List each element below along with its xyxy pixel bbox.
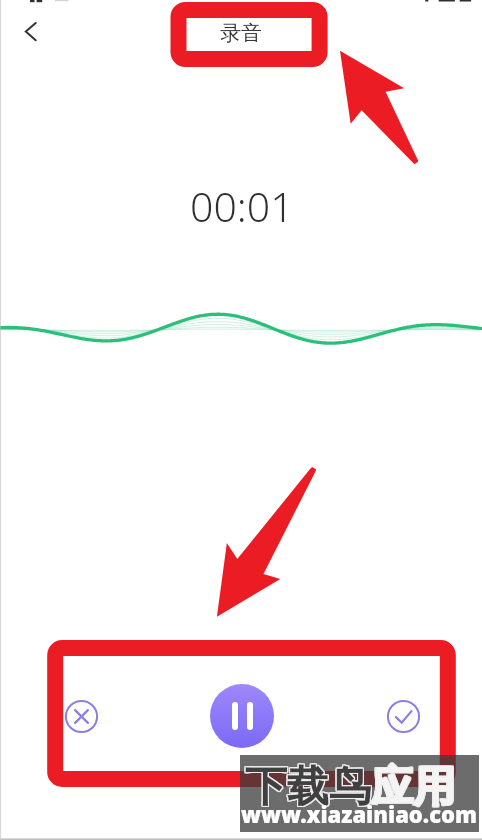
button[interactable]: Cancel recording [56,691,107,742]
staticText: 下载鸟应用 [244,762,454,815]
staticText: 00:01 [190,178,294,234]
staticText: 下载鸟应用 [246,762,456,815]
staticText: 下载鸟应用 [246,760,456,813]
staticText: 下载鸟应用 [244,761,454,814]
button[interactable]: Pause recording [210,684,274,748]
staticText: 下载鸟应用 [244,760,454,813]
button[interactable]: Back [8,10,54,56]
staticText: 下载鸟 [245,761,371,814]
staticText: 下载鸟应用 [245,760,455,813]
button[interactable]: Finish recording [378,691,429,742]
staticText: www.xiazainiao.com [241,799,478,829]
staticText: 下载鸟应用 [246,761,456,814]
staticText: 录音 [220,20,262,46]
staticText: 应用 [371,761,455,814]
staticText: 下载鸟应用 [245,762,455,815]
